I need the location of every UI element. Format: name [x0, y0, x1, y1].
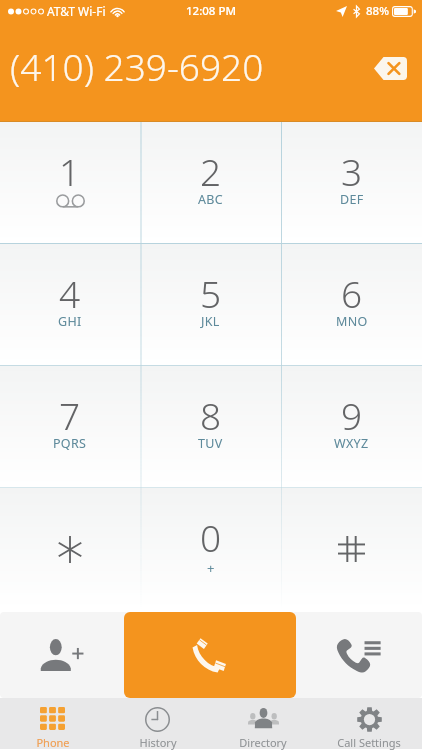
- button[interactable]: 2: [140, 122, 281, 243]
- staticText: 88%: [366, 3, 389, 19]
- button[interactable]: 8: [140, 366, 281, 487]
- button[interactable]: History: [105, 698, 210, 749]
- staticText: (410) 239-6920: [10, 41, 264, 91]
- staticText: Phone: [36, 735, 70, 750]
- button[interactable]: Call log: [296, 612, 422, 698]
- staticText: +: [207, 559, 215, 577]
- staticText: 12:08 PM: [186, 3, 237, 19]
- staticText: 7: [59, 390, 81, 440]
- staticText: DEF: [340, 191, 364, 208]
- staticText: 8: [200, 390, 222, 440]
- staticText: ABC: [198, 191, 223, 208]
- staticText: WXYZ: [334, 435, 369, 452]
- staticText: 5: [200, 268, 222, 318]
- staticText: 6: [341, 268, 363, 318]
- staticText: History: [139, 735, 177, 750]
- staticText: Call Settings: [337, 735, 401, 750]
- staticText: MNO: [336, 313, 368, 330]
- staticText: AT&T Wi-Fi: [47, 3, 106, 19]
- staticText: GHI: [58, 313, 82, 330]
- staticText: 9: [341, 390, 363, 440]
- staticText: Directory: [239, 735, 287, 750]
- staticText: 0: [200, 512, 222, 562]
- staticText: 2: [200, 146, 222, 196]
- button[interactable]: 5: [140, 244, 281, 365]
- staticText: 1: [59, 146, 81, 196]
- button[interactable]: 4: [0, 244, 140, 365]
- staticText: 4: [59, 268, 81, 318]
- button[interactable]: 1: [0, 122, 140, 243]
- button[interactable]: Phone: [0, 698, 105, 749]
- button[interactable]: 3: [281, 122, 422, 243]
- button[interactable]: 6: [281, 244, 422, 365]
- staticText: JKL: [201, 313, 220, 330]
- staticText: TUV: [198, 435, 223, 452]
- button[interactable]: Call: [124, 612, 296, 698]
- staticText: PQRS: [53, 435, 87, 452]
- button[interactable]: 0: [140, 488, 281, 610]
- button[interactable]: [0, 488, 140, 610]
- staticText: 3: [341, 146, 363, 196]
- button[interactable]: [281, 488, 422, 610]
- button[interactable]: 7: [0, 366, 140, 487]
- button[interactable]: Backspace: [364, 50, 416, 86]
- button[interactable]: Call Settings: [316, 698, 422, 749]
- button[interactable]: Directory: [210, 698, 316, 749]
- button[interactable]: Add contact: [0, 612, 124, 698]
- button[interactable]: 9: [281, 366, 422, 487]
